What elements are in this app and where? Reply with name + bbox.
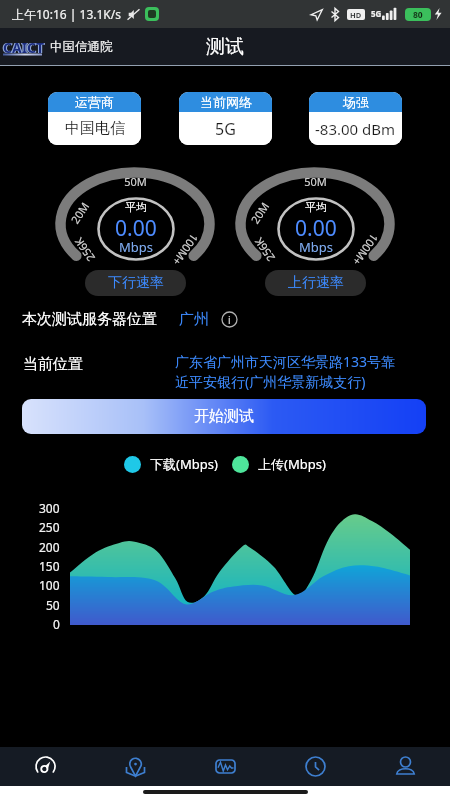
staticText: 50M (124, 174, 147, 189)
button[interactable]: 历史 (270, 747, 360, 786)
staticText: CAICT (2, 38, 44, 57)
staticText: 平均 (305, 200, 327, 214)
button[interactable]: 我的 (360, 747, 450, 786)
staticText: 场强 (343, 94, 369, 110)
staticText: 下行速率 (108, 274, 164, 292)
staticText: 上传(Mbps) (258, 455, 326, 473)
staticText: 上行速率 (288, 274, 344, 292)
staticText: 5G (371, 8, 382, 19)
staticText: 平均 (125, 200, 147, 214)
staticText: 50M (304, 174, 327, 189)
staticText: i (228, 313, 231, 327)
staticText: 0.00 (295, 214, 337, 242)
button[interactable]: 场强 (309, 92, 402, 145)
staticText: 200 (39, 539, 60, 553)
staticText: 150 (39, 558, 60, 572)
staticText: 256K (251, 235, 278, 265)
button[interactable]: 当前网络 (179, 92, 272, 145)
staticText: 300 (39, 500, 60, 514)
button[interactable]: 图表 (180, 747, 270, 786)
button[interactable]: 地图 (90, 747, 180, 786)
staticText: 当前网络 (200, 94, 252, 110)
staticText: 当前位置 (23, 355, 83, 374)
staticText: 5G (215, 118, 236, 140)
staticText: 100M+ (169, 231, 202, 269)
staticText: 20M (247, 199, 272, 227)
button[interactable]: 开始测试 (22, 399, 426, 434)
staticText: HD (350, 10, 362, 20)
staticText: 广州 (179, 310, 209, 329)
staticText: CAICT (3, 38, 45, 57)
staticText: 中国电信 (65, 119, 125, 138)
staticText: 中国信通院 (50, 39, 113, 55)
staticText: 100M+ (349, 231, 382, 269)
staticText: 开始测试 (194, 407, 254, 426)
staticText: 256K (71, 235, 98, 265)
button[interactable]: 测速 (0, 747, 90, 786)
staticText: 80 (413, 9, 423, 21)
staticText: 0 (53, 616, 60, 630)
staticText: 上午10:16 | 13.1K/s (12, 6, 121, 22)
staticText: 本次测试服务器位置 (22, 310, 157, 329)
button[interactable]: 运营商 (48, 92, 141, 145)
button[interactable]: 服务器信息 (221, 311, 238, 328)
staticText: 250 (39, 519, 60, 533)
button[interactable]: 上行速率 (265, 270, 366, 296)
staticText: 20M (67, 199, 92, 227)
staticText: 0.00 (115, 214, 157, 242)
staticText: Mbps (119, 238, 154, 256)
staticText: 下载(Mbps) (150, 455, 218, 473)
button[interactable]: 下行速率 (85, 270, 186, 296)
staticText: 测试 (206, 35, 244, 59)
staticText: 广东省广州市天河区华景路133号靠近平安银行(广州华景新城支行) (175, 352, 409, 391)
staticText: -83.00 dBm (315, 119, 396, 139)
staticText: 50 (46, 597, 60, 611)
staticText: Mbps (299, 238, 334, 256)
staticText: 100 (39, 577, 60, 591)
staticText: CAICT (4, 38, 46, 57)
staticText: 运营商 (75, 94, 114, 110)
